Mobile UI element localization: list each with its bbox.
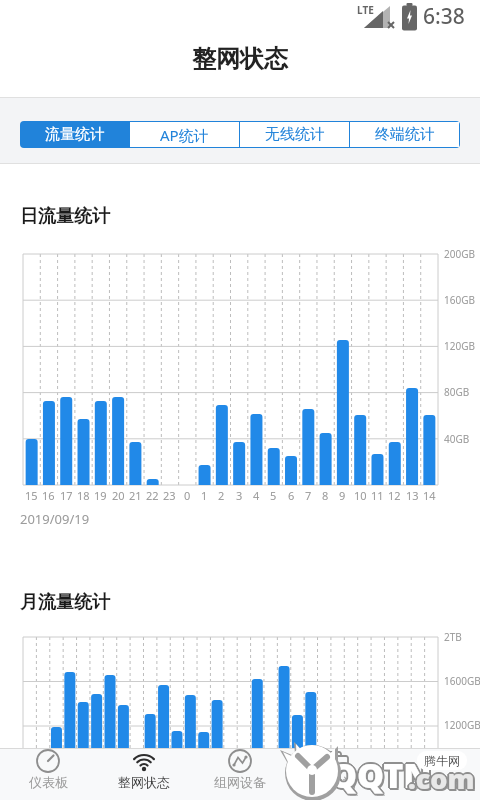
staticText: 23 bbox=[163, 488, 176, 503]
staticText: .com bbox=[406, 760, 473, 797]
staticText: QQTN bbox=[329, 751, 431, 797]
staticText: 3 bbox=[236, 488, 243, 503]
staticText: .com bbox=[407, 759, 474, 796]
staticText: 日流量统计 bbox=[20, 205, 110, 228]
staticText: QQTN bbox=[332, 752, 434, 798]
staticText: 40GB bbox=[444, 432, 470, 446]
staticText: 14 bbox=[423, 488, 436, 503]
button[interactable]: 组网设备 bbox=[192, 748, 288, 800]
staticText: 更多功能 bbox=[406, 774, 458, 790]
staticText: 21 bbox=[129, 488, 142, 503]
staticText: 11 bbox=[371, 488, 384, 503]
staticText: AP统计 bbox=[160, 125, 209, 145]
button[interactable]: 更多功能 bbox=[384, 748, 480, 800]
staticText: 终端统计 bbox=[375, 125, 435, 144]
staticText: 客户端 bbox=[317, 774, 356, 790]
staticText: 7 bbox=[305, 488, 312, 503]
staticText: 无线统计 bbox=[265, 125, 325, 144]
staticText: 整网状态 bbox=[118, 774, 170, 790]
staticText: QQTN bbox=[331, 753, 433, 799]
button[interactable]: 终端统计 bbox=[350, 122, 459, 147]
staticText: .com bbox=[409, 761, 476, 798]
staticText: QQTN bbox=[328, 752, 430, 798]
staticText: QQTN bbox=[329, 753, 431, 799]
staticText: 1600GB bbox=[444, 674, 480, 688]
staticText: 10 bbox=[354, 488, 367, 503]
staticText: 4 bbox=[253, 488, 260, 503]
staticText: .com bbox=[408, 762, 475, 799]
staticText: 20 bbox=[112, 488, 125, 503]
staticText: 1 bbox=[201, 488, 208, 503]
staticText: .com bbox=[410, 760, 477, 797]
staticText: QQTN bbox=[332, 754, 434, 800]
staticText: 200GB bbox=[444, 247, 475, 261]
staticText: 18 bbox=[77, 488, 90, 503]
staticText: .com bbox=[407, 761, 474, 798]
staticText: 0 bbox=[184, 488, 191, 503]
staticText: 2 bbox=[218, 488, 225, 503]
staticText: .com bbox=[408, 760, 475, 797]
staticText: QQTN bbox=[331, 751, 433, 797]
staticText: 17 bbox=[60, 488, 73, 503]
staticText: 13 bbox=[406, 488, 419, 503]
staticText: 流量统计 bbox=[45, 125, 105, 144]
staticText: QQTN bbox=[330, 750, 432, 796]
button[interactable]: AP统计 bbox=[130, 122, 239, 147]
button[interactable]: 流量统计 bbox=[21, 122, 129, 147]
staticText: LTE bbox=[357, 3, 374, 17]
staticText: 5 bbox=[270, 488, 277, 503]
staticText: 22 bbox=[146, 488, 159, 503]
staticText: .com bbox=[409, 759, 476, 796]
staticText: 19 bbox=[94, 488, 107, 503]
staticText: 9 bbox=[339, 488, 346, 503]
staticText: 仪表板 bbox=[29, 774, 68, 790]
button[interactable]: 客户端 bbox=[288, 748, 384, 800]
staticText: 1200GB bbox=[444, 718, 480, 732]
button[interactable]: 整网状态 bbox=[96, 748, 192, 800]
staticText: 8 bbox=[322, 488, 329, 503]
staticText: .com bbox=[408, 758, 475, 795]
staticText: 15 bbox=[25, 488, 38, 503]
staticText: 月流量统计 bbox=[20, 591, 110, 614]
staticText: 6:38 bbox=[423, 2, 465, 31]
staticText: .com bbox=[410, 762, 477, 799]
button[interactable]: 仪表板 bbox=[0, 748, 96, 800]
staticText: 6 bbox=[288, 488, 295, 503]
staticText: QQTN bbox=[330, 752, 432, 798]
staticText: 腾牛网 bbox=[424, 753, 460, 768]
staticText: 整网状态 bbox=[192, 44, 288, 74]
staticText: 12 bbox=[388, 488, 401, 503]
staticText: 80GB bbox=[444, 385, 470, 399]
staticText: 2TB bbox=[444, 630, 462, 644]
button[interactable]: 无线统计 bbox=[240, 122, 349, 147]
staticText: 2019/09/19 bbox=[20, 510, 90, 528]
staticText: 120GB bbox=[444, 339, 475, 353]
staticText: QQTN bbox=[330, 754, 432, 800]
staticText: 16 bbox=[42, 488, 55, 503]
staticText: 160GB bbox=[444, 293, 475, 307]
staticText: 组网设备 bbox=[214, 774, 266, 790]
